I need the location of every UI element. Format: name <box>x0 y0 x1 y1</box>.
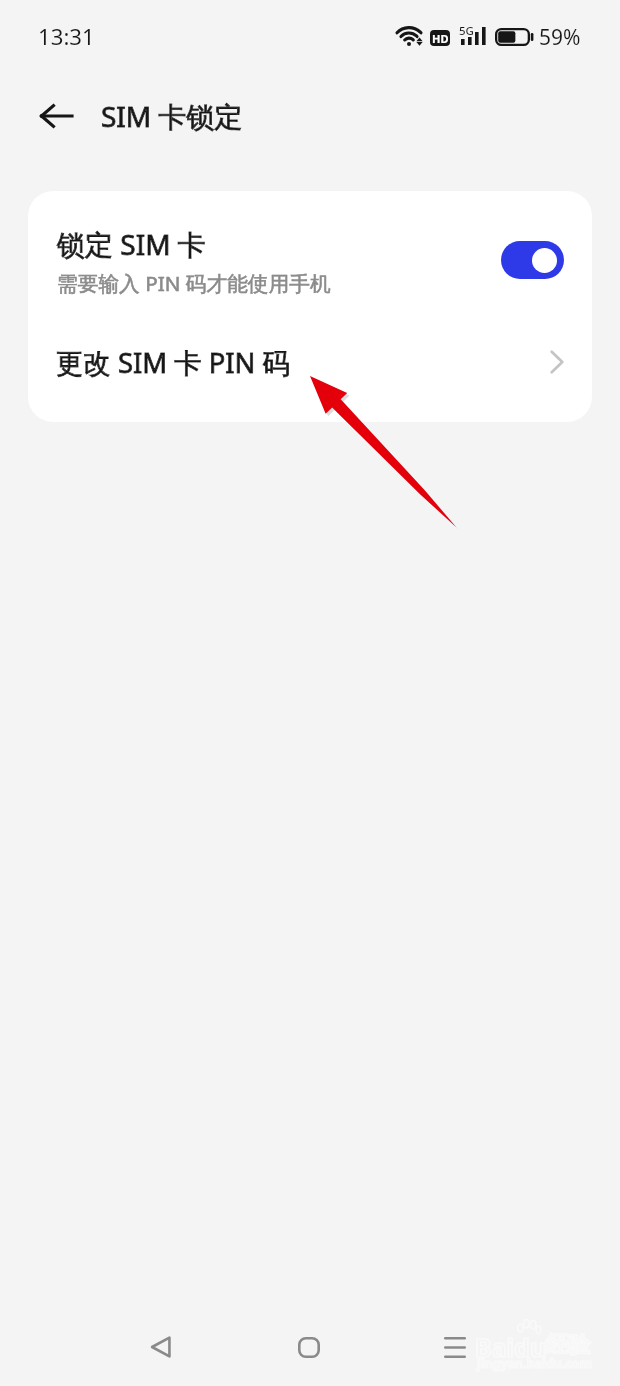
button[interactable]: Back <box>26 86 86 146</box>
staticText: 59% <box>539 23 581 52</box>
button[interactable]: Back <box>120 1307 200 1386</box>
staticText: 更改 SIM 卡 PIN 码 <box>56 344 290 381</box>
staticText: 锁定 SIM 卡 <box>57 225 206 263</box>
staticText: 13:31 <box>38 21 95 51</box>
button[interactable]: Lock SIM card toggle <box>501 241 564 279</box>
button[interactable]: Recent apps <box>415 1307 495 1386</box>
staticText: HD <box>432 31 449 46</box>
staticText: 更改 SIM 卡 PIN 码 <box>56 344 290 381</box>
button[interactable]: Home <box>269 1307 349 1386</box>
staticText: SIM 卡锁定 <box>101 97 243 135</box>
staticText: 需要输入 PIN 码才能使用手机 <box>57 269 331 297</box>
staticText: 需要输入 PIN 码才能使用手机 <box>57 269 331 297</box>
button[interactable]: 更改 SIM 卡 PIN 码 <box>28 324 592 422</box>
staticText: SIM 卡锁定 <box>101 97 243 135</box>
staticText: 锁定 SIM 卡 <box>57 225 206 263</box>
staticText: 5G <box>459 23 474 39</box>
button[interactable]: 锁定 SIM 卡 <box>28 191 592 324</box>
